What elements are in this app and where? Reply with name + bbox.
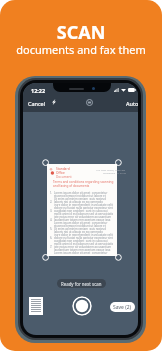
staticText: eiusmod tempor incididunt ut labore et d… [54, 224, 114, 227]
staticText: Terms and conditions regarding scanning … [53, 180, 117, 188]
button[interactable]: Last scan thumbnail [29, 297, 43, 315]
staticText: cupidatat non proident, sunt in culpa qu… [54, 209, 114, 212]
staticText: Standard [56, 167, 70, 171]
staticText: Lorem ipsum dolor sit amet, consectetur … [54, 191, 114, 194]
button[interactable]: Flash [49, 97, 59, 107]
staticText: 7. [50, 245, 54, 248]
staticText: 1. [50, 191, 54, 194]
button[interactable]: Capture [72, 296, 92, 316]
staticText: documents and fax them [0, 42, 162, 57]
staticText: mollit anim id est laborum sed ut perspi… [54, 212, 114, 215]
staticText: iste natus error sit voluptatem accusant… [54, 215, 114, 218]
staticText: Lorem ipsum dolor sit amet, consectetur … [54, 251, 114, 254]
staticText: Springfield 11 22 33 [103, 171, 126, 174]
staticText: Document [56, 175, 72, 179]
staticText: Lorem ipsum dolor sit amet, consectetur … [54, 221, 114, 224]
staticText: laboris nisi ut aliquip ex ea commodo co… [54, 230, 114, 233]
staticText: 3. [50, 209, 54, 212]
staticText: Ut enim ad minim veniam, quis nostrud ex… [54, 227, 114, 230]
staticText: dolore eu fugiat nulla pariatur excepteu… [54, 206, 114, 209]
button[interactable]: Save (2) [110, 302, 135, 312]
staticText: Ready for next scan [61, 281, 102, 287]
staticText: irure dolor in reprehenderit in voluptat… [54, 233, 114, 236]
staticText: iste natus error sit voluptatem accusant… [54, 245, 114, 248]
button[interactable]: Auto capture mode [84, 97, 94, 107]
button[interactable]: Auto [122, 97, 138, 110]
staticText: 6. [50, 236, 54, 239]
staticText: SCAN [0, 20, 162, 45]
button[interactable]: Cancel [24, 97, 50, 110]
staticText: irure dolor in reprehenderit in voluptat… [54, 203, 114, 206]
staticText: Office [56, 171, 65, 175]
staticText: 123 Main Street, Suite 400 [96, 168, 126, 171]
staticText: 2. [50, 200, 54, 203]
staticText: laboris nisi ut aliquip ex ea commodo co… [54, 200, 114, 203]
staticText: dolore eu fugiat nulla pariatur excepteu… [54, 236, 114, 239]
staticText: Ut enim ad minim veniam, quis nostrud ex… [54, 197, 114, 200]
staticText: eiusmod tempor incididunt ut labore et d… [54, 194, 114, 197]
staticText: Save (2) [113, 304, 132, 311]
staticText: 5. [50, 227, 54, 230]
staticText: 4. [50, 218, 54, 221]
staticText: mollit anim id est laborum sed ut perspi… [54, 242, 114, 245]
staticText: laudantium totam rem aperiam eaque ipsa … [54, 218, 114, 221]
staticText: cupidatat non proident, sunt in culpa qu… [54, 239, 114, 242]
staticText: 12:22 [31, 87, 46, 94]
staticText: laudantium totam rem aperiam eaque ipsa … [54, 248, 114, 251]
